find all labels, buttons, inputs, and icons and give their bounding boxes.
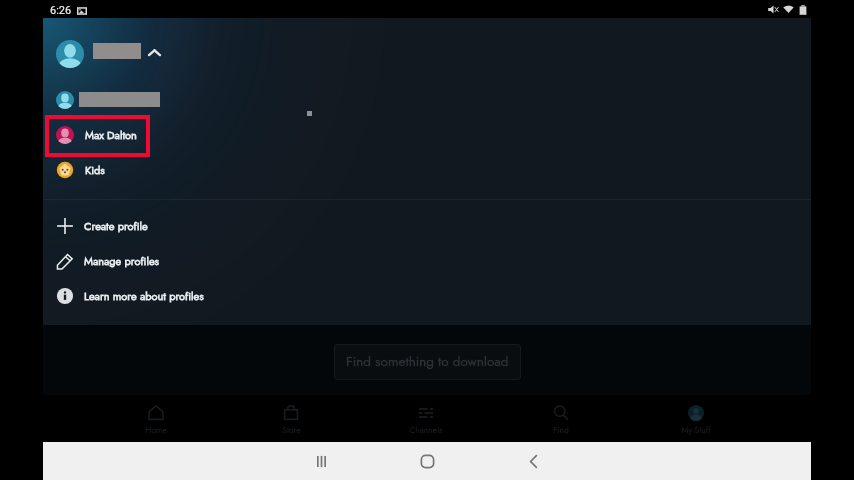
button[interactable]: My Stuff (651, 398, 741, 443)
staticText: Find (553, 424, 569, 436)
button[interactable]: Back (498, 442, 568, 480)
button[interactable]: Create profile (43, 216, 323, 236)
staticText: Create profile (84, 218, 148, 234)
staticText: My Stuff (681, 424, 711, 436)
button[interactable]: Learn more about profiles (43, 286, 323, 306)
staticText: Kids (85, 162, 105, 178)
button[interactable] (43, 88, 218, 111)
button[interactable]: Store (246, 398, 336, 443)
staticText: Learn more about profiles (84, 288, 204, 304)
button[interactable]: Max Dalton (43, 123, 218, 147)
button[interactable]: Recent apps (286, 442, 356, 480)
button[interactable]: Find something to download (334, 344, 521, 380)
staticText: Max Dalton (85, 127, 137, 143)
button[interactable] (43, 36, 218, 71)
button[interactable]: Kids (43, 158, 218, 182)
staticText: Manage profiles (84, 253, 160, 269)
staticText: Store (282, 424, 301, 436)
staticText: Home (145, 424, 167, 436)
staticText: Find something to download (346, 352, 509, 372)
staticText: 6:26 (50, 4, 72, 17)
button[interactable]: Home (111, 398, 201, 443)
button[interactable]: Channels (381, 398, 471, 443)
staticText: Channels (409, 424, 443, 436)
button[interactable]: Home (392, 442, 462, 480)
button[interactable]: Manage profiles (43, 251, 323, 271)
button[interactable]: Find (516, 398, 606, 443)
